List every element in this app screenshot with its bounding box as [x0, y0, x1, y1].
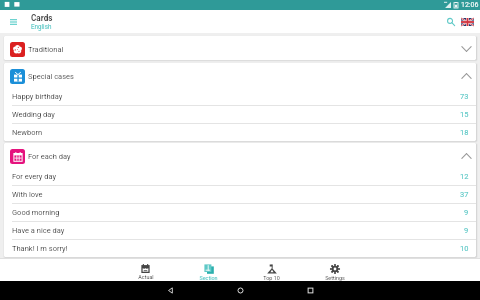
staticText: Special cases: [28, 72, 74, 81]
staticText: Thank! I m sorry!: [12, 244, 68, 253]
button[interactable]: With love: [4, 186, 476, 203]
button[interactable]: Settings: [303, 258, 366, 281]
staticText: Happy birthday: [12, 92, 63, 101]
staticText: 37: [460, 190, 469, 199]
staticText: Top 10: [263, 275, 280, 281]
button[interactable]: Recents: [275, 281, 345, 300]
button[interactable]: Newborn: [4, 124, 476, 141]
button[interactable]: Search: [436, 10, 458, 33]
staticText: 9: [464, 208, 469, 217]
staticText: For every day: [12, 172, 57, 181]
staticText: With love: [12, 190, 43, 199]
staticText: Cards: [31, 13, 53, 23]
button[interactable]: Have a nice day: [4, 222, 476, 239]
button[interactable]: Wedding day: [4, 106, 476, 123]
button[interactable]: Menu: [0, 10, 27, 33]
staticText: English: [31, 23, 52, 30]
staticText: Traditional: [28, 45, 64, 54]
staticText: 12: [460, 172, 469, 181]
staticText: Actual: [138, 274, 154, 280]
button[interactable]: Top 10: [240, 258, 303, 281]
staticText: For each day: [28, 152, 71, 161]
staticText: Wedding day: [12, 110, 55, 119]
button[interactable]: Language: [458, 10, 477, 33]
button[interactable]: Back: [135, 281, 205, 300]
button[interactable]: For every day: [4, 167, 476, 185]
button[interactable]: Section: [177, 258, 240, 281]
staticText: 18: [460, 128, 469, 137]
button[interactable]: Thank! I m sorry!: [4, 240, 476, 257]
button[interactable]: Good morning: [4, 204, 476, 221]
button[interactable]: Home: [205, 281, 275, 300]
button[interactable]: Special cases: [4, 63, 476, 87]
staticText: Settings: [325, 275, 345, 281]
staticText: 10: [460, 244, 469, 253]
button[interactable]: Traditional: [4, 36, 476, 60]
button[interactable]: Happy birthday: [4, 87, 476, 105]
button[interactable]: For each day: [4, 143, 476, 167]
staticText: 9: [464, 226, 469, 235]
staticText: Newborn: [12, 128, 43, 137]
button[interactable]: Actual: [114, 258, 177, 281]
staticText: Good morning: [12, 208, 60, 217]
staticText: Section: [199, 275, 218, 281]
staticText: 15: [460, 110, 469, 119]
staticText: 73: [460, 92, 469, 101]
staticText: Have a nice day: [12, 226, 65, 235]
staticText: 12:06: [461, 1, 479, 9]
